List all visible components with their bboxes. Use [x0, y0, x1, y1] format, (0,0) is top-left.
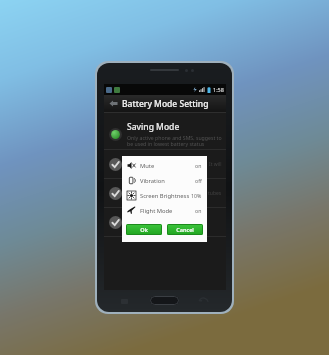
- button[interactable]: It will: [104, 150, 226, 178]
- button[interactable]: Saving Mode: [104, 120, 226, 149]
- staticText: Ok: [140, 226, 148, 234]
- button[interactable]: Cancel: [167, 224, 203, 235]
- staticText: 10%: [191, 192, 202, 199]
- staticText: Flight Mode: [140, 207, 173, 215]
- button[interactable]: Back: [104, 95, 122, 112]
- button[interactable]: [104, 208, 226, 236]
- staticText: Cancel: [176, 226, 194, 234]
- staticText: Battery Mode Setting: [122, 98, 209, 110]
- button[interactable]: Screen Brightness: [122, 188, 207, 203]
- staticText: Mute: [140, 162, 155, 170]
- staticText: Only active phone and SMS, suggest to be…: [127, 134, 226, 148]
- button[interactable]: tubes: [104, 179, 226, 207]
- button[interactable]: Flight Mode: [122, 203, 207, 218]
- button[interactable]: Mute: [122, 158, 207, 173]
- staticText: 1:58: [213, 86, 224, 93]
- staticText: Screen Brightness: [140, 192, 190, 200]
- staticText: Saving Mode: [127, 121, 180, 133]
- staticText: tubes: [208, 190, 222, 197]
- staticText: on: [195, 162, 202, 169]
- staticText: It will: [209, 161, 222, 168]
- staticText: Vibration: [140, 177, 165, 185]
- button[interactable]: Ok: [126, 224, 162, 235]
- button[interactable]: Home: [150, 296, 179, 305]
- button[interactable]: Back: [199, 298, 208, 304]
- staticText: off: [195, 177, 202, 184]
- staticText: on: [195, 207, 202, 214]
- button[interactable]: Vibration: [122, 173, 207, 188]
